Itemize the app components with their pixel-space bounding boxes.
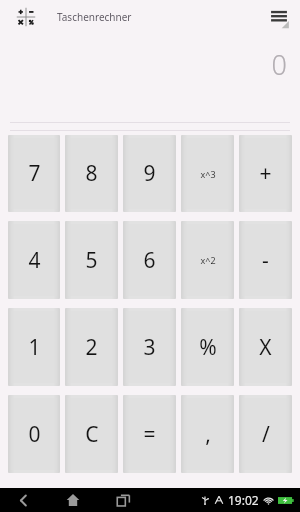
staticText: + <box>259 159 272 188</box>
staticText: x^2 <box>200 254 216 266</box>
staticText: 0 <box>271 46 287 83</box>
button[interactable]: 5 <box>65 221 118 299</box>
staticText: 5 <box>85 246 98 275</box>
staticText: 1 <box>28 333 41 362</box>
staticText: % <box>199 333 217 362</box>
staticText: x^3 <box>200 168 216 180</box>
button[interactable]: Home <box>62 489 84 511</box>
button[interactable]: 2 <box>65 308 118 386</box>
button[interactable]: App icon <box>14 5 38 29</box>
staticText: X <box>259 333 272 362</box>
staticText: = <box>143 420 156 449</box>
staticText: 7 <box>28 159 41 188</box>
button[interactable]: - <box>239 221 292 299</box>
button[interactable]: = <box>123 395 176 473</box>
staticText: 2 <box>85 333 98 362</box>
button[interactable]: 3 <box>123 308 176 386</box>
staticText: 0 <box>28 420 41 449</box>
staticText: 4 <box>28 246 41 275</box>
button[interactable]: Back <box>12 489 34 511</box>
staticText: - <box>262 246 269 275</box>
button[interactable]: Menu <box>266 4 292 30</box>
button[interactable]: 0 <box>8 395 60 473</box>
button[interactable]: 0 <box>0 34 300 122</box>
button[interactable]: Recent apps <box>112 489 134 511</box>
staticText: 19:02 <box>228 492 259 508</box>
staticText: 3 <box>143 333 156 362</box>
button[interactable]: , <box>181 395 234 473</box>
button[interactable]: / <box>239 395 292 473</box>
button[interactable]: X <box>239 308 292 386</box>
button[interactable]: 9 <box>123 135 176 212</box>
button[interactable]: 1 <box>8 308 60 386</box>
staticText: C <box>85 420 99 449</box>
button[interactable]: 6 <box>123 221 176 299</box>
staticText: 6 <box>143 246 156 275</box>
staticText: , <box>205 420 211 449</box>
button[interactable]: % <box>181 308 234 386</box>
button[interactable]: C <box>65 395 118 473</box>
staticText: Taschenrechner <box>57 10 132 24</box>
staticText: 8 <box>85 159 98 188</box>
staticText: 9 <box>143 159 156 188</box>
button[interactable]: 7 <box>8 135 60 212</box>
staticText: / <box>262 420 270 449</box>
button[interactable]: 8 <box>65 135 118 212</box>
button[interactable]: 4 <box>8 221 60 299</box>
button[interactable]: + <box>239 135 292 212</box>
button[interactable]: x^3 <box>181 135 234 212</box>
button[interactable]: x^2 <box>181 221 234 299</box>
